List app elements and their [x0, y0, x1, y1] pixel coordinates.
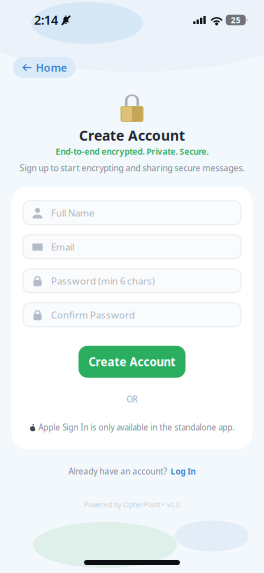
- staticText: Create Account: [79, 126, 185, 145]
- staticText: 2:14: [34, 11, 58, 29]
- staticText: Full Name: [51, 206, 94, 219]
- button[interactable]: Password (min 6 chars): [23, 269, 241, 293]
- staticText: End-to-end encrypted. Private. Secure.: [55, 146, 208, 157]
- staticText: Confirm Password: [51, 308, 135, 321]
- button[interactable]: Already have an account?: [68, 466, 195, 477]
- button[interactable]: Confirm Password: [23, 303, 241, 327]
- button[interactable]: Email: [23, 235, 241, 259]
- staticText: Powered by CipherPoint • v1.0: [84, 500, 180, 509]
- staticText: Email: [51, 240, 74, 253]
- staticText: Password (min 6 chars): [51, 274, 155, 287]
- staticText: Create Account: [88, 354, 175, 370]
- button[interactable]: Home: [13, 57, 76, 78]
- staticText: Log In: [170, 466, 195, 477]
- staticText: Home: [36, 60, 67, 75]
- staticText: Apple Sign In is only available in the s…: [38, 422, 234, 433]
- button[interactable]: Create Account: [78, 346, 185, 378]
- staticText: Already have an account?: [68, 466, 167, 477]
- staticText: 25: [231, 14, 241, 26]
- staticText: Sign up to start encrypting and sharing …: [19, 162, 244, 174]
- staticText: OR: [126, 394, 137, 405]
- button[interactable]: Full Name: [23, 201, 241, 225]
